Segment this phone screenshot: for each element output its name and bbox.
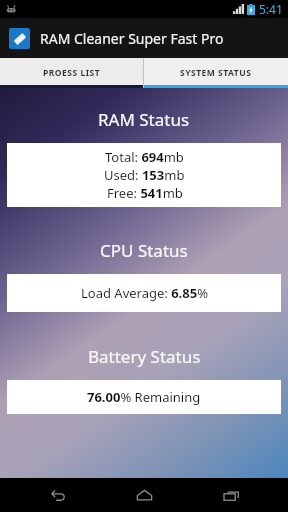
button[interactable]: Home <box>114 478 174 512</box>
staticText: Free: 541mb <box>107 184 183 202</box>
button[interactable]: Total: 694mb <box>7 143 281 207</box>
staticText: 5:41 <box>259 1 283 17</box>
staticText: RAM Status <box>98 108 190 131</box>
staticText: Total: 694mb <box>105 148 184 166</box>
button[interactable]: App icon <box>9 28 30 49</box>
staticText: SYSTEM STATUS <box>180 67 252 79</box>
button[interactable]: Recent apps <box>201 478 261 512</box>
button[interactable]: PROESS LIST <box>0 58 143 88</box>
button[interactable]: Load Average: 6.85% <box>7 274 281 312</box>
staticText: CPU Status <box>100 239 188 262</box>
staticText: Load Average: 6.85% <box>81 284 208 302</box>
button[interactable]: Back <box>27 478 87 512</box>
staticText: Battery Status <box>88 345 201 368</box>
staticText: RAM Cleaner Super Fast Pro <box>40 29 224 48</box>
staticText: Used: 153mb <box>104 166 185 184</box>
staticText: PROESS LIST <box>43 67 101 79</box>
staticText: 76.00% Remaining <box>87 388 201 406</box>
button[interactable]: 76.00% Remaining <box>7 380 281 414</box>
button[interactable]: SYSTEM STATUS <box>144 58 288 88</box>
